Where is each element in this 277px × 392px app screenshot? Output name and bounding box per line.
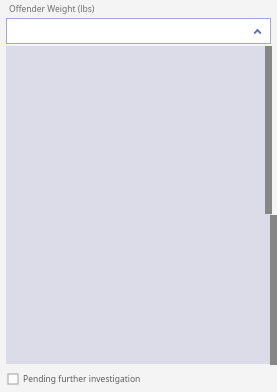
other: Collapse dropdown bbox=[253, 28, 262, 35]
button[interactable]: 49 and under bbox=[6, 70, 272, 93]
button[interactable]: 301-325 bbox=[6, 323, 272, 346]
button[interactable]: 276-300 bbox=[6, 300, 272, 323]
button[interactable]: 201-225 bbox=[6, 231, 272, 254]
button[interactable] bbox=[8, 47, 270, 68]
button[interactable]: 126-150 bbox=[6, 162, 272, 185]
button[interactable]: 326-350 bbox=[6, 346, 272, 364]
button[interactable]: 251-275 bbox=[6, 277, 272, 300]
button[interactable]: 176-200 bbox=[6, 208, 272, 231]
staticText: Offender Weight (lbs) bbox=[9, 3, 95, 15]
button[interactable]: 76-100 bbox=[6, 116, 272, 139]
button[interactable]: Pending further investigation bbox=[8, 373, 141, 385]
button[interactable]: Collapse dropdown bbox=[6, 18, 271, 44]
button[interactable]: 226-250 bbox=[6, 254, 272, 277]
staticText: Pending further investigation bbox=[23, 373, 141, 385]
button[interactable]: 50-75 bbox=[6, 93, 272, 116]
button[interactable]: 151-175 bbox=[6, 185, 272, 208]
button[interactable]: 101-125 bbox=[6, 139, 272, 162]
